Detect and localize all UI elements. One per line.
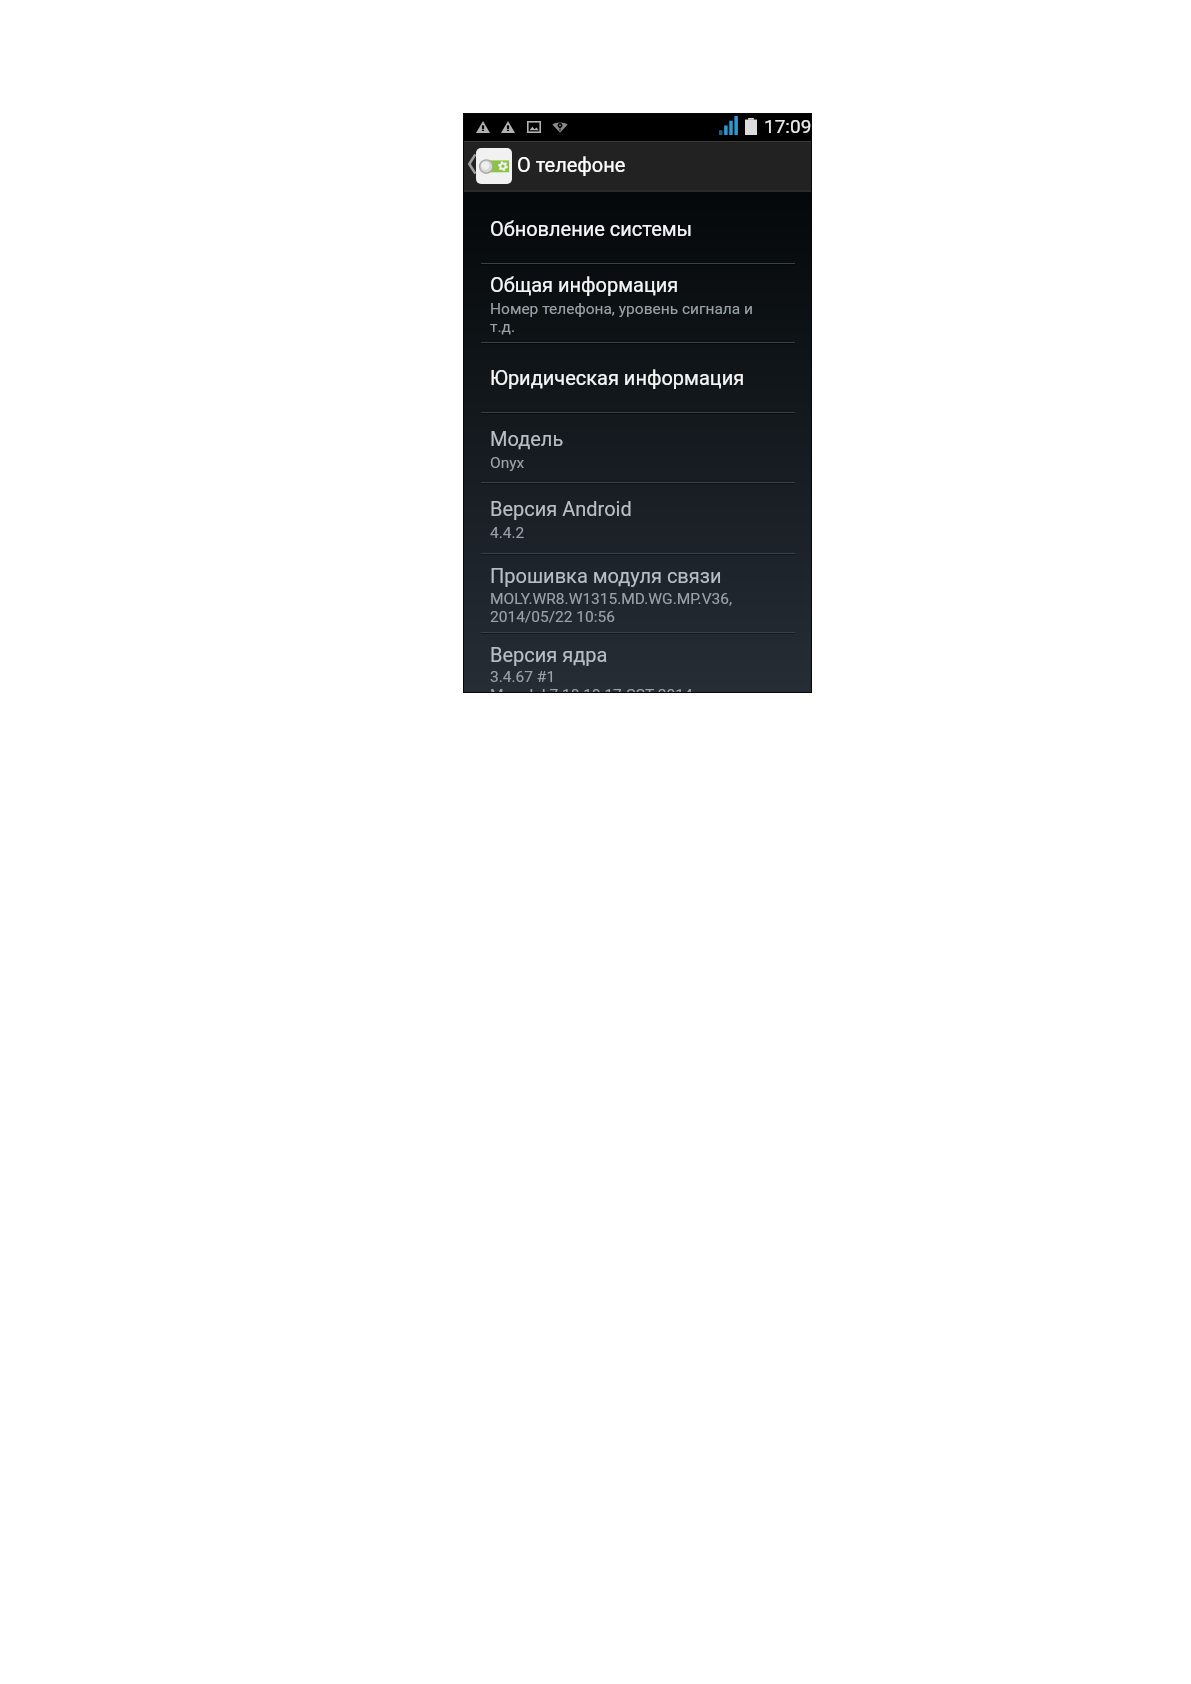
staticText: Обновление системы bbox=[490, 217, 765, 240]
button[interactable]: Navigate up to Settings bbox=[463, 141, 633, 192]
staticText: Версия Android bbox=[490, 497, 765, 520]
staticText: Onyx bbox=[490, 454, 765, 472]
button[interactable]: Версия Android bbox=[463, 483, 812, 553]
staticText: Общая информация bbox=[490, 273, 765, 296]
button[interactable]: Юридическая информация bbox=[463, 343, 812, 412]
staticText: Юридическая информация bbox=[490, 366, 765, 389]
button[interactable]: Прошивка модуля связи bbox=[463, 554, 812, 632]
staticText: Прошивка модуля связи bbox=[490, 564, 765, 587]
button[interactable]: Модель bbox=[463, 413, 812, 482]
button[interactable]: Общая информация bbox=[463, 264, 812, 342]
staticText: 17:09 bbox=[764, 115, 812, 137]
staticText: О телефоне bbox=[517, 153, 626, 176]
staticText: Версия ядра bbox=[490, 643, 765, 666]
staticText: Модель bbox=[490, 427, 765, 450]
staticText: Номер телефона, уровень сигнала и т.д. bbox=[490, 300, 765, 335]
staticText: MOLY.WR8.W1315.MD.WG.MP.V36, 2014/05/22 … bbox=[490, 590, 765, 625]
staticText: 3.4.67 #1 Mon Jul 7 18:19:17 CST 2014 bbox=[490, 668, 765, 693]
button[interactable]: Версия ядра bbox=[463, 633, 812, 693]
button[interactable]: Обновление системы bbox=[463, 192, 812, 263]
staticText: 4.4.2 bbox=[490, 524, 765, 542]
